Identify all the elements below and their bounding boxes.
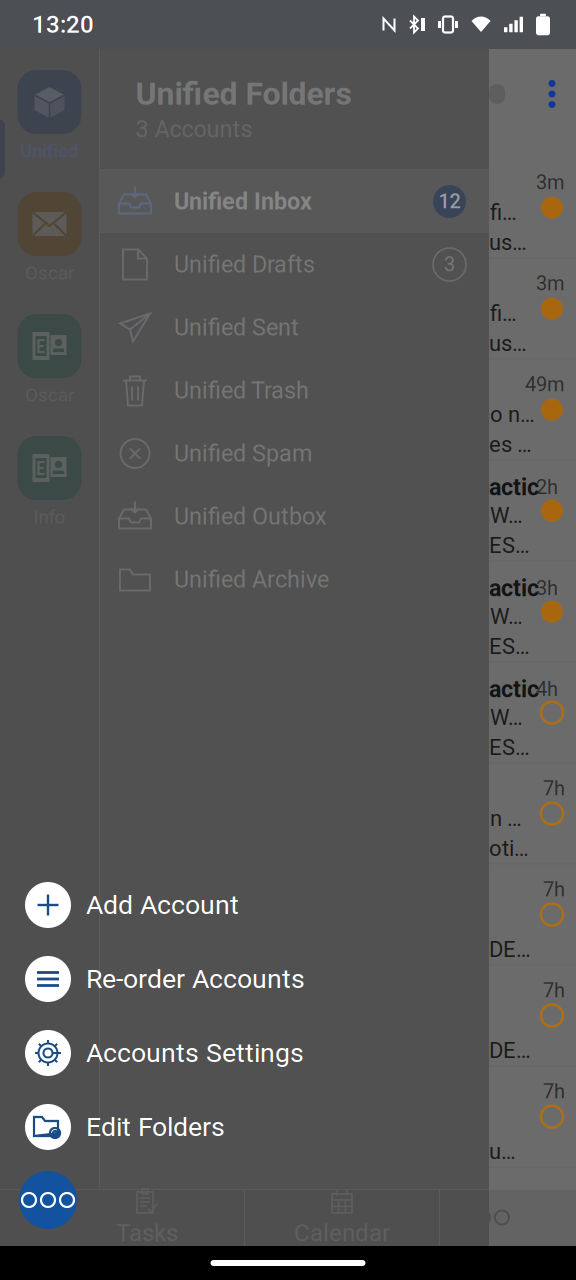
- staticText: Unified Archive: [174, 566, 329, 593]
- button[interactable]: Tasks: [50, 1189, 244, 1246]
- button[interactable]: Calendar: [245, 1189, 439, 1246]
- staticText: Add Account: [86, 889, 239, 921]
- button[interactable]: 7h: [489, 1069, 576, 1170]
- staticText: 7h: [543, 878, 565, 901]
- button[interactable]: Unified Inbox: [99, 170, 489, 233]
- button[interactable]: Oscar: [0, 299, 99, 421]
- staticText: n …: [490, 806, 522, 831]
- button[interactable]: actic: [489, 665, 576, 766]
- button[interactable]: Unified Trash: [99, 359, 489, 422]
- button[interactable]: Unified Sent: [99, 296, 489, 359]
- staticText: actic: [489, 474, 539, 501]
- button[interactable]: Edit Folders: [0, 1090, 489, 1164]
- button[interactable]: Oscar: [0, 177, 99, 299]
- staticText: Oscar: [25, 384, 74, 406]
- staticText: 3h: [536, 577, 558, 600]
- staticText: ES…: [489, 735, 530, 760]
- button[interactable]: 3m: [489, 261, 576, 362]
- staticText: Oscar: [25, 262, 74, 284]
- staticText: Edit Folders: [86, 1111, 225, 1143]
- staticText: 7h: [543, 1080, 565, 1103]
- staticText: 3m: [536, 171, 565, 194]
- button[interactable]: 3m: [489, 160, 576, 261]
- button[interactable]: Unified Archive: [99, 548, 489, 611]
- button[interactable]: Accounts Settings: [0, 1016, 489, 1090]
- button[interactable]: Info: [0, 421, 99, 543]
- staticText: 7h: [543, 979, 565, 1002]
- staticText: Unified: [20, 140, 79, 162]
- staticText: 13:20: [32, 10, 94, 38]
- staticText: 49m: [525, 373, 565, 396]
- button[interactable]: actic: [489, 564, 576, 665]
- staticText: o n…: [490, 402, 535, 427]
- staticText: us…: [489, 331, 527, 356]
- staticText: actic: [489, 575, 539, 602]
- staticText: es …: [489, 432, 532, 457]
- button[interactable]: Re-order Accounts: [0, 942, 489, 1016]
- staticText: actic: [489, 676, 539, 703]
- staticText: Unified Trash: [174, 377, 309, 404]
- staticText: Info: [33, 506, 65, 528]
- staticText: ES…: [489, 533, 530, 558]
- button[interactable]: More tabs: [440, 1189, 526, 1246]
- button[interactable]: 7h: [489, 766, 576, 867]
- staticText: 3: [444, 253, 455, 276]
- staticText: 7h: [543, 777, 565, 800]
- staticText: Accounts Settings: [86, 1037, 304, 1069]
- staticText: Tasks: [116, 1219, 178, 1247]
- staticText: Unified Folders: [135, 75, 351, 113]
- staticText: u…: [489, 1139, 516, 1164]
- button[interactable]: More: [530, 72, 574, 116]
- staticText: Re-order Accounts: [86, 963, 305, 995]
- staticText: 4h: [536, 678, 558, 701]
- staticText: Unified Spam: [174, 440, 312, 467]
- button[interactable]: actic: [489, 463, 576, 564]
- staticText: Unified Drafts: [174, 251, 315, 278]
- button[interactable]: 7h: [489, 867, 576, 968]
- button[interactable]: Unified Outbox: [99, 485, 489, 548]
- staticText: W…: [490, 604, 523, 629]
- staticText: DE…: [489, 937, 531, 962]
- staticText: us…: [489, 230, 527, 255]
- button[interactable]: Add Account: [0, 868, 489, 942]
- staticText: fi…: [490, 301, 517, 326]
- button[interactable]: Unified: [0, 55, 99, 177]
- staticText: fi…: [490, 200, 517, 225]
- button[interactable]: 49m: [489, 362, 576, 463]
- staticText: Unified Inbox: [174, 188, 312, 215]
- button[interactable]: More options: [19, 1171, 77, 1229]
- button[interactable]: Unified Drafts: [99, 233, 489, 296]
- staticText: 3 Accounts: [135, 116, 252, 143]
- staticText: DE…: [489, 1038, 531, 1063]
- staticText: Calendar: [294, 1219, 390, 1247]
- staticText: 2h: [536, 476, 558, 499]
- button[interactable]: 7h: [489, 968, 576, 1069]
- staticText: oti…: [489, 836, 529, 861]
- staticText: W…: [490, 705, 523, 730]
- staticText: 3m: [536, 272, 565, 295]
- staticText: 12: [438, 190, 460, 213]
- staticText: Unified Outbox: [174, 503, 327, 530]
- staticText: W…: [490, 503, 523, 528]
- staticText: ES…: [489, 634, 530, 659]
- staticText: Unified Sent: [174, 314, 299, 341]
- button[interactable]: Unified Spam: [99, 422, 489, 485]
